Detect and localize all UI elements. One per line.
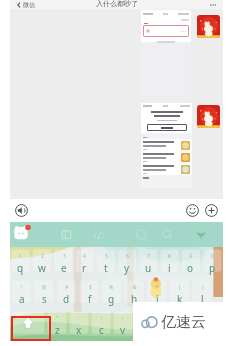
staticText: s xyxy=(42,292,47,306)
button[interactable]: Emoji xyxy=(184,202,201,219)
staticText: c xyxy=(99,323,104,337)
other: Back xyxy=(16,2,22,8)
staticText: ( xyxy=(179,284,181,291)
button[interactable]: Stickers xyxy=(13,225,30,242)
staticText: % xyxy=(109,284,114,291)
staticText: w xyxy=(38,261,46,275)
button[interactable]: ' xyxy=(68,309,90,340)
staticText: u xyxy=(145,261,152,275)
button[interactable]: 4 xyxy=(74,247,95,278)
staticText: # xyxy=(65,284,69,291)
button[interactable]: % xyxy=(100,278,123,309)
button[interactable]: 0 xyxy=(202,247,223,278)
staticText: * xyxy=(156,284,159,291)
staticText: 3 xyxy=(63,253,66,260)
button[interactable]: 9 xyxy=(180,247,201,278)
staticText: y xyxy=(124,261,130,275)
button[interactable]: Back xyxy=(10,0,35,9)
staticText: ; xyxy=(122,315,124,322)
button[interactable]: More options xyxy=(208,0,218,9)
staticText: x xyxy=(76,323,82,337)
staticText: 2 xyxy=(41,253,44,260)
button[interactable]: @ xyxy=(33,278,56,309)
button[interactable]: 8 xyxy=(159,247,180,278)
staticText: f xyxy=(88,292,92,306)
staticText: 8 xyxy=(168,253,171,260)
staticText: o xyxy=(187,261,194,275)
staticText: 入什么都吵了 xyxy=(96,0,138,8)
button[interactable]: Voice input xyxy=(12,201,31,220)
button[interactable]: m xyxy=(178,309,200,340)
staticText: 7 xyxy=(147,253,150,260)
button[interactable]: # xyxy=(55,278,78,309)
button[interactable]: More xyxy=(203,202,220,219)
button[interactable]: Emoji panel xyxy=(136,229,147,240)
staticText: d xyxy=(63,292,70,306)
staticText: : xyxy=(101,315,103,322)
staticText: 1 xyxy=(19,253,22,260)
button[interactable]: 7 xyxy=(138,247,159,278)
staticText: @ xyxy=(42,284,47,291)
button[interactable]: " xyxy=(46,309,68,340)
staticText: h xyxy=(131,292,138,306)
button[interactable]: ; xyxy=(112,309,134,340)
button[interactable]: * xyxy=(146,278,169,309)
staticText: k xyxy=(177,292,183,306)
button[interactable]: $ xyxy=(78,278,101,309)
staticText: b xyxy=(142,323,149,337)
staticText: / xyxy=(145,315,147,322)
staticText: p xyxy=(209,261,216,275)
staticText: " xyxy=(56,315,59,322)
staticText: ? xyxy=(166,315,169,322)
staticText: & xyxy=(133,284,137,291)
staticText: 0 xyxy=(211,253,214,260)
staticText: n xyxy=(164,323,171,337)
button[interactable]: / xyxy=(134,309,156,340)
button[interactable]: Avatar xyxy=(197,105,220,128)
staticText: 亿速云 xyxy=(161,313,206,332)
staticText: e xyxy=(61,261,67,275)
button[interactable]: : xyxy=(90,309,112,340)
staticText: v xyxy=(120,323,126,337)
staticText: 6 xyxy=(126,253,129,260)
button[interactable]: ? xyxy=(156,309,178,340)
staticText: ' xyxy=(78,315,80,322)
staticText: t xyxy=(104,261,108,275)
staticText: r xyxy=(82,261,87,275)
button[interactable]: 6 xyxy=(116,247,137,278)
staticText: z xyxy=(55,323,60,337)
button[interactable]: ( xyxy=(168,278,191,309)
staticText: g xyxy=(108,292,115,306)
button[interactable]: ) xyxy=(191,278,214,309)
staticText: m xyxy=(184,323,194,337)
button[interactable]: Clipboard xyxy=(61,229,72,240)
button[interactable]: ! xyxy=(10,278,33,309)
button[interactable] xyxy=(141,10,191,96)
button[interactable] xyxy=(141,103,192,188)
staticText: q xyxy=(17,261,24,275)
staticText: 5 xyxy=(105,253,108,260)
button[interactable]: Theme xyxy=(194,227,208,241)
button[interactable]: 2 xyxy=(31,247,52,278)
staticText: 9 xyxy=(189,253,192,260)
button[interactable]: & xyxy=(123,278,146,309)
staticText: $ xyxy=(89,284,92,291)
staticText: i xyxy=(168,261,171,275)
staticText: 微信 xyxy=(23,1,35,9)
button[interactable]: 1 xyxy=(10,247,31,278)
staticText: a xyxy=(19,292,25,306)
button[interactable]: 5 xyxy=(95,247,116,278)
button[interactable]: Voice input xyxy=(93,229,106,242)
button[interactable]: Search xyxy=(162,229,173,240)
button[interactable]: 3 xyxy=(53,247,74,278)
staticText: j xyxy=(156,292,159,306)
staticText: ) xyxy=(202,284,204,291)
staticText: 4 xyxy=(83,253,86,260)
staticText: l xyxy=(201,292,204,306)
button[interactable]: Avatar xyxy=(197,15,220,38)
staticText: ! xyxy=(21,284,23,291)
